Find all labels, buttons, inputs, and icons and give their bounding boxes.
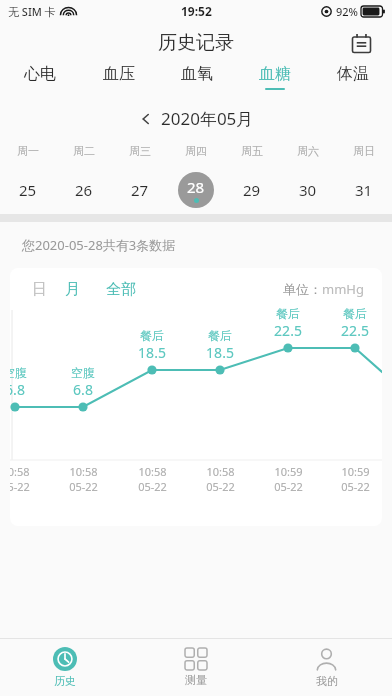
staticText: 25 — [19, 180, 37, 200]
staticText: 血糖 — [259, 64, 291, 84]
button[interactable]: 25 — [0, 166, 56, 214]
button[interactable]: 血糖 — [236, 64, 314, 100]
staticText: 22.5 — [341, 321, 369, 340]
staticText: 26 — [75, 180, 93, 200]
button[interactable]: 血压 — [79, 64, 158, 100]
button[interactable]: 测量 — [130, 639, 261, 696]
button[interactable]: 28 — [168, 166, 224, 214]
staticText: 10:59 — [341, 464, 370, 479]
staticText: 05-22 — [138, 479, 167, 494]
staticText: 周三 — [129, 144, 151, 158]
staticText: 空腹 — [10, 365, 27, 380]
staticText: 05-22 — [206, 479, 235, 494]
button[interactable]: 27 — [112, 166, 168, 214]
staticText: mmHg — [322, 280, 364, 298]
staticText: 10:58 — [10, 464, 30, 479]
staticText: 空腹 — [71, 365, 95, 380]
staticText: 餐后 — [140, 328, 164, 343]
staticText: 周一 — [17, 144, 39, 158]
staticText: 无 SIM 卡 — [8, 4, 56, 19]
staticText: 血氧 — [181, 64, 213, 84]
staticText: 测量 — [185, 673, 207, 687]
staticText: 餐后 — [343, 306, 367, 321]
other: 上个月 — [139, 112, 153, 126]
staticText: 05-22 — [69, 479, 98, 494]
staticText: 周六 — [297, 144, 319, 158]
button[interactable]: 全部 — [106, 280, 136, 299]
staticText: 单位： — [283, 281, 322, 297]
staticText: 10:59 — [274, 464, 303, 479]
staticText: 22.5 — [274, 321, 302, 340]
button[interactable]: 30 — [280, 166, 336, 214]
staticText: 餐后 — [208, 328, 232, 343]
button[interactable]: 26 — [56, 166, 112, 214]
staticText: 周四 — [185, 144, 207, 158]
staticText: 92% — [336, 4, 358, 19]
staticText: 周五 — [241, 144, 263, 158]
button[interactable]: 血氧 — [158, 64, 236, 100]
staticText: 10:58 — [206, 464, 235, 479]
staticText: 31 — [355, 180, 373, 200]
staticText: 我的 — [316, 674, 338, 688]
button[interactable]: 记录 — [344, 26, 378, 60]
staticText: 05-22 — [10, 479, 30, 494]
staticText: 18.5 — [138, 343, 166, 362]
staticText: 历史记录 — [158, 31, 234, 55]
button[interactable]: 历史 — [0, 639, 130, 696]
button[interactable]: 日 — [32, 280, 47, 299]
staticText: 29 — [243, 180, 261, 200]
button[interactable]: 月 — [65, 280, 80, 299]
staticText: 血压 — [103, 64, 135, 84]
staticText: 10:58 — [69, 464, 98, 479]
staticText: 18.5 — [206, 343, 234, 362]
staticText: 周日 — [353, 144, 375, 158]
staticText: 2020年05月 — [161, 107, 254, 130]
staticText: 05-22 — [274, 479, 303, 494]
staticText: 历史 — [54, 674, 76, 688]
button[interactable]: 体温 — [314, 64, 392, 100]
staticText: 6.8 — [10, 380, 25, 399]
staticText: 您2020-05-28共有3条数据 — [22, 236, 176, 254]
staticText: 30 — [299, 180, 317, 200]
staticText: 27 — [131, 180, 149, 200]
staticText: 周二 — [73, 144, 95, 158]
staticText: 05-22 — [341, 479, 370, 494]
button[interactable]: 心电 — [0, 64, 79, 100]
staticText: 餐后 — [276, 306, 300, 321]
button[interactable]: 31 — [336, 166, 392, 214]
staticText: 28 — [187, 177, 205, 197]
button[interactable]: 我的 — [261, 639, 392, 696]
staticText: 19:52 — [181, 3, 212, 19]
staticText: 体温 — [337, 64, 369, 84]
staticText: 6.8 — [73, 380, 93, 399]
button[interactable]: 29 — [224, 166, 280, 214]
button[interactable]: 上个月 — [139, 107, 254, 130]
staticText: 10:58 — [138, 464, 167, 479]
staticText: 心电 — [24, 64, 56, 84]
